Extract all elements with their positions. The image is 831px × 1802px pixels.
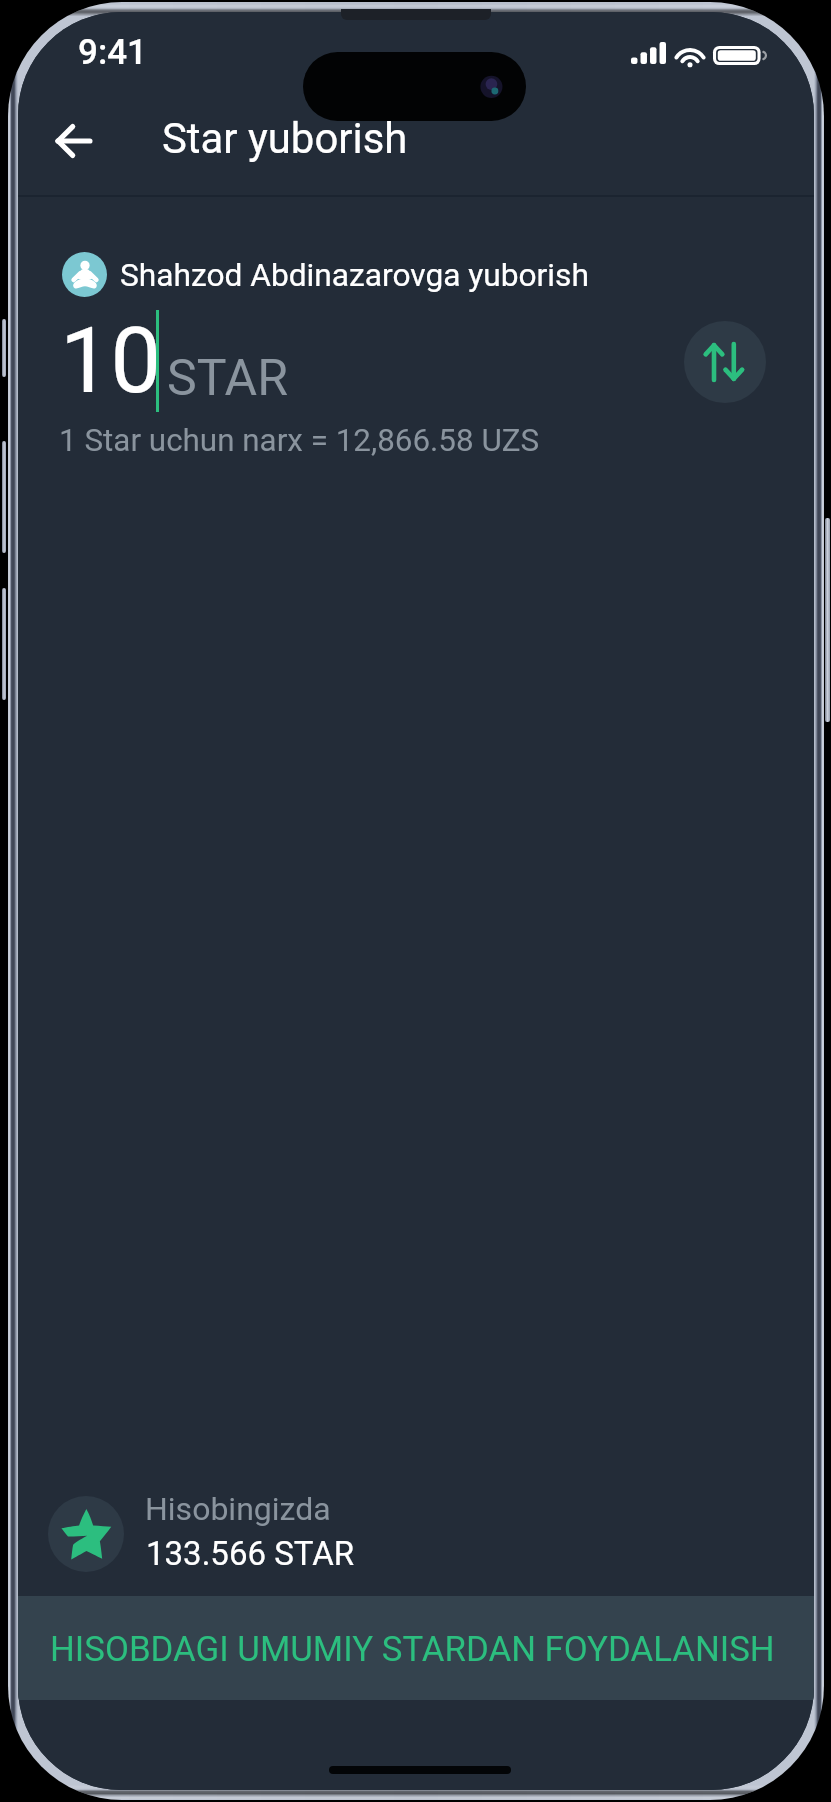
staticText: HISOBDAGI UMUMIY STARDAN FOYDALANISH <box>50 1629 775 1670</box>
staticText: 9:41 <box>78 32 147 73</box>
staticText: Star yuborish <box>162 114 408 163</box>
staticText: Hisobingizda <box>145 1490 331 1528</box>
button[interactable]: Hisobingizda <box>28 1484 814 1584</box>
button[interactable]: HISOBDAGI UMUMIY STARDAN FOYDALANISH <box>18 1596 814 1700</box>
staticText: 133.566 STAR <box>146 1534 355 1573</box>
staticText: 10 <box>60 309 162 414</box>
button[interactable]: 10 <box>56 306 656 416</box>
button[interactable]: Swap currency <box>684 321 766 403</box>
button[interactable]: Shahzod Abdinazarovga yuborish <box>56 246 596 302</box>
button[interactable]: Back <box>39 107 107 175</box>
staticText: STAR <box>167 349 289 408</box>
staticText: Shahzod Abdinazarovga yuborish <box>120 257 589 294</box>
staticText: 1 Star uchun narx = 12,866.58 UZS <box>59 422 540 459</box>
